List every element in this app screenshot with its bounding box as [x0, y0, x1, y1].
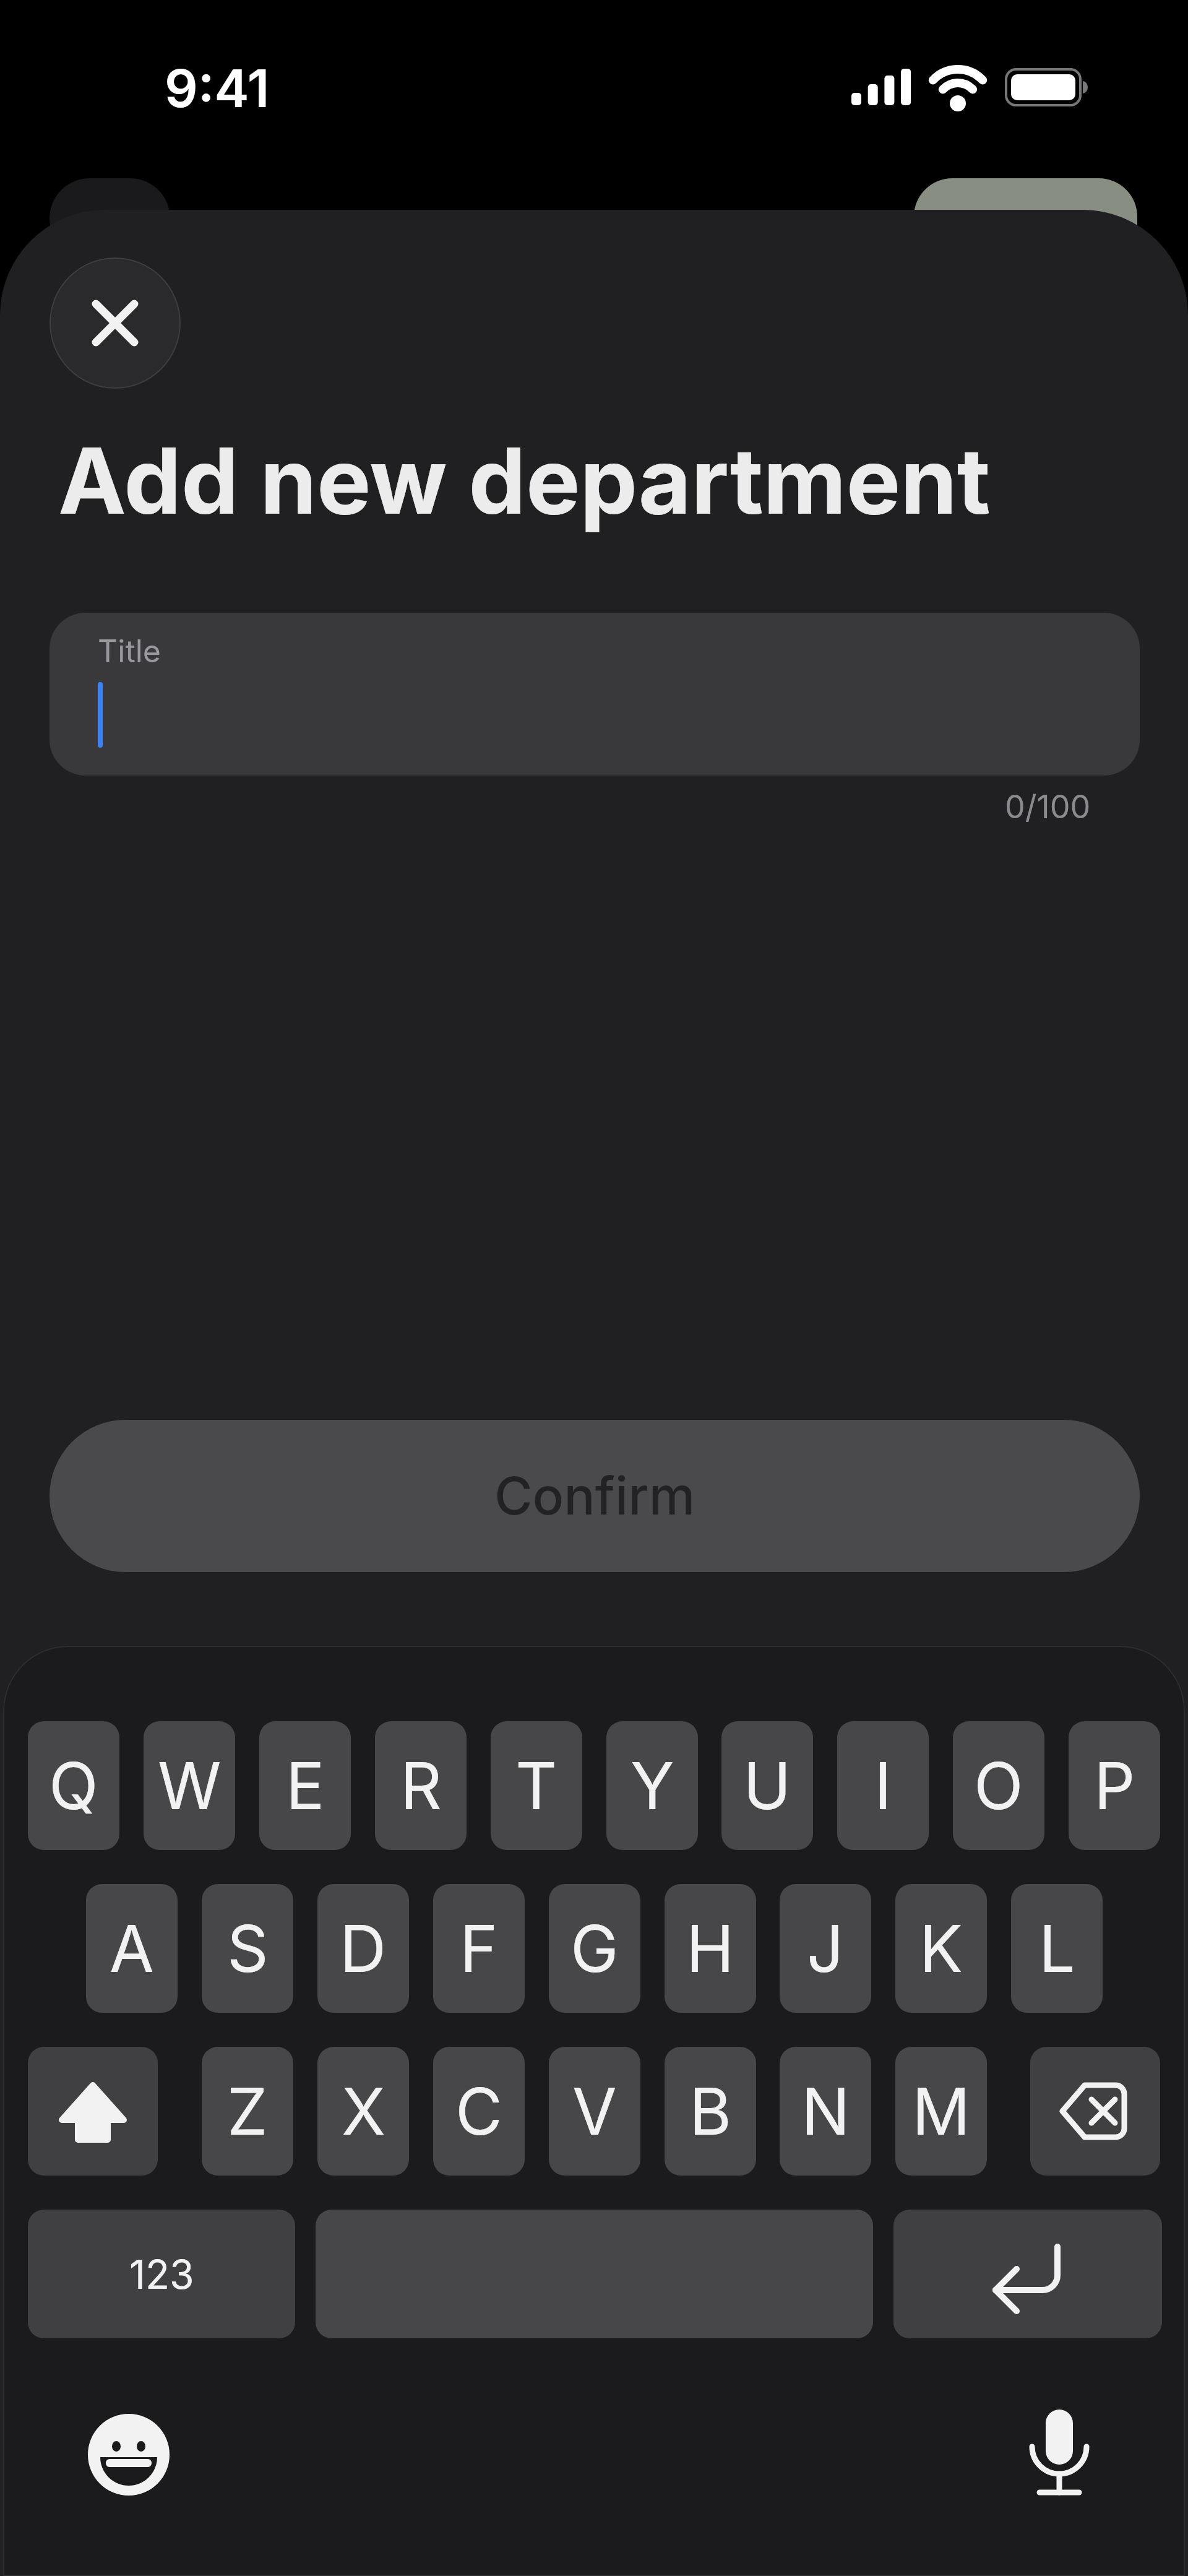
staticText: X [342, 2072, 385, 2150]
staticText: R [400, 1747, 442, 1825]
button[interactable]: G [549, 1884, 640, 2013]
button[interactable]: H [665, 1884, 756, 2013]
staticText: 0/100 [1005, 787, 1091, 826]
staticText: Z [227, 2072, 268, 2150]
button[interactable]: I [837, 1721, 929, 1850]
staticText: H [686, 1909, 734, 1987]
button[interactable]: M [895, 2047, 987, 2176]
staticText: U [743, 1747, 791, 1825]
button[interactable]: A [86, 1884, 178, 2013]
staticText: G [570, 1909, 619, 1987]
button[interactable]: U [721, 1721, 813, 1850]
staticText: V [572, 2072, 617, 2150]
staticText: O [974, 1747, 1023, 1825]
staticText: P [1094, 1747, 1135, 1825]
button[interactable]: S [202, 1884, 293, 2013]
button[interactable]: J [780, 1884, 871, 2013]
button[interactable]: E [259, 1721, 351, 1850]
button[interactable]: N [780, 2047, 871, 2176]
staticText: N [801, 2072, 850, 2150]
staticText: A [110, 1909, 154, 1987]
staticText: Y [631, 1747, 674, 1825]
button[interactable] [88, 2414, 170, 2496]
button[interactable]: Title [49, 613, 1140, 776]
staticText: K [919, 1909, 963, 1987]
staticText: Q [49, 1747, 98, 1825]
button[interactable]: B [665, 2047, 756, 2176]
staticText: C [455, 2072, 502, 2150]
button[interactable] [1030, 2047, 1160, 2176]
staticText: D [340, 1909, 387, 1987]
button[interactable] [28, 2047, 158, 2176]
staticText: S [227, 1909, 269, 1987]
button[interactable]: O [953, 1721, 1044, 1850]
staticText: J [807, 1909, 844, 1987]
staticText: M [912, 2072, 970, 2150]
button[interactable] [893, 2210, 1162, 2338]
button[interactable]: F [433, 1884, 525, 2013]
button[interactable]: X [317, 2047, 409, 2176]
button[interactable]: C [433, 2047, 525, 2176]
button[interactable]: W [144, 1721, 235, 1850]
staticText: T [515, 1747, 557, 1825]
staticText: W [158, 1747, 222, 1825]
button[interactable]: 123 [28, 2210, 295, 2338]
button[interactable]: L [1011, 1884, 1103, 2013]
button[interactable]: T [491, 1721, 582, 1850]
staticText: E [286, 1747, 325, 1825]
staticText: 123 [129, 2250, 194, 2298]
staticText: Add new department [58, 426, 991, 536]
staticText: F [460, 1909, 498, 1987]
button[interactable] [1018, 2401, 1100, 2500]
button[interactable] [49, 257, 181, 389]
staticText: Confirm [494, 1464, 695, 1528]
button[interactable]: D [317, 1884, 409, 2013]
staticText: B [689, 2072, 732, 2150]
staticText: I [874, 1747, 892, 1825]
staticText: L [1039, 1909, 1075, 1987]
staticText: Title [98, 633, 161, 670]
button[interactable]: Z [202, 2047, 293, 2176]
button[interactable]: K [895, 1884, 987, 2013]
button[interactable]: Y [606, 1721, 698, 1850]
staticText: 9:41 [165, 57, 270, 120]
button[interactable]: P [1069, 1721, 1160, 1850]
button[interactable]: Confirm [49, 1420, 1140, 1572]
button[interactable]: R [375, 1721, 467, 1850]
button[interactable]: Q [28, 1721, 119, 1850]
button[interactable]: V [549, 2047, 640, 2176]
